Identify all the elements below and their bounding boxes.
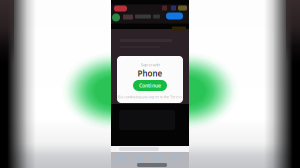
staticText: Continue — [139, 82, 161, 89]
staticText: Sign in with — [140, 62, 159, 67]
staticText: Phone — [137, 68, 162, 79]
button[interactable]: Open — [166, 12, 183, 19]
button[interactable]: Continue — [133, 80, 167, 91]
staticText: By continuing you agree to the Terms — [118, 94, 182, 99]
